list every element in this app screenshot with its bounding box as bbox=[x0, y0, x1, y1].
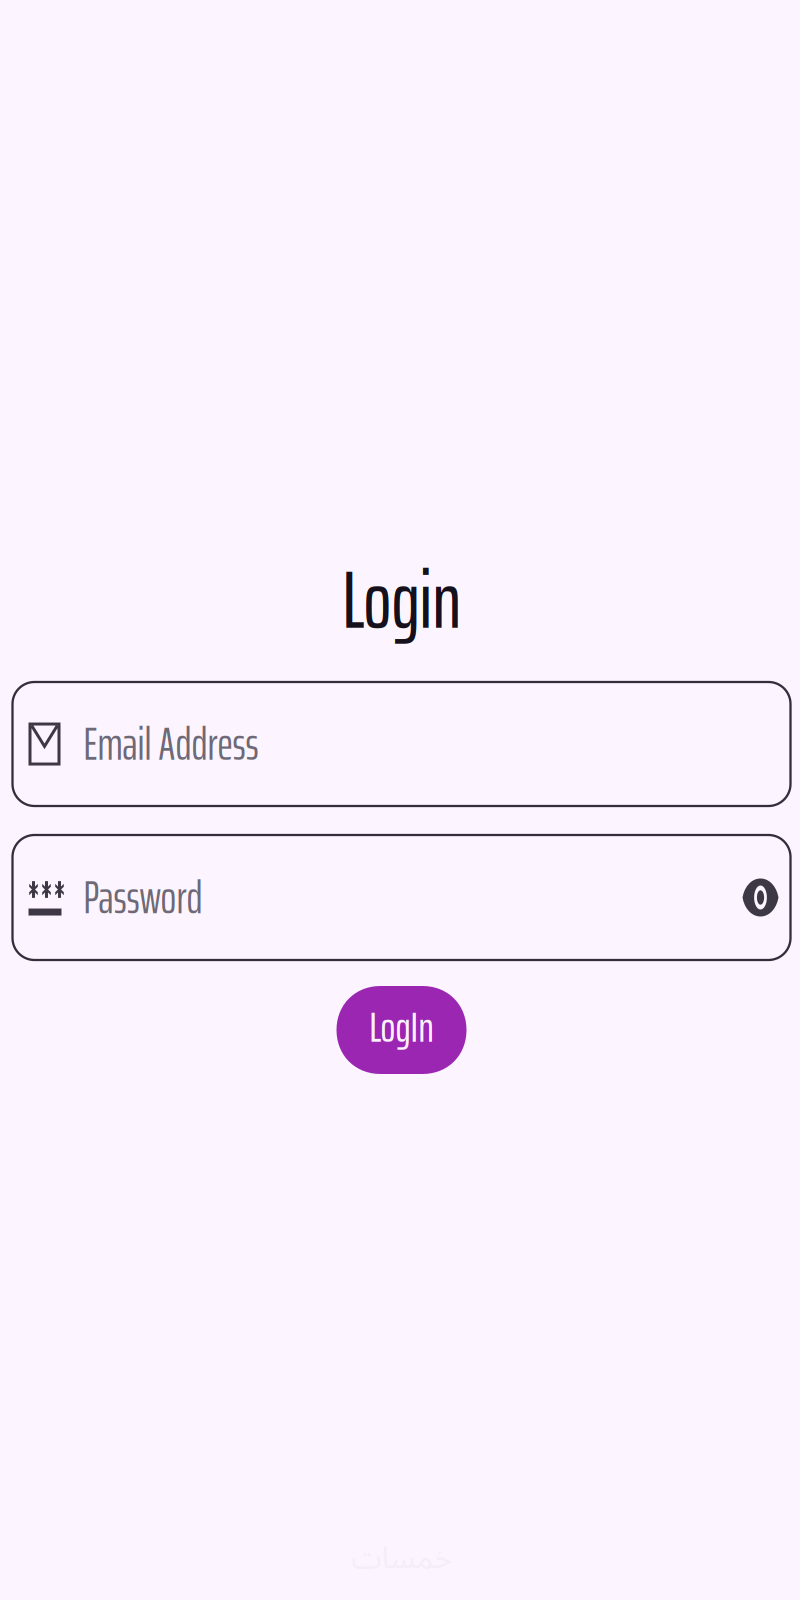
staticText: Password bbox=[83, 862, 202, 933]
staticText: Email Address bbox=[83, 708, 258, 780]
staticText: Login bbox=[342, 537, 460, 663]
button[interactable]: Password bbox=[12, 835, 790, 960]
button[interactable]: Show password bbox=[742, 878, 778, 916]
button[interactable]: Email Address bbox=[12, 682, 790, 806]
button[interactable]: LogIn bbox=[336, 986, 466, 1074]
staticText: LogIn bbox=[369, 993, 433, 1061]
